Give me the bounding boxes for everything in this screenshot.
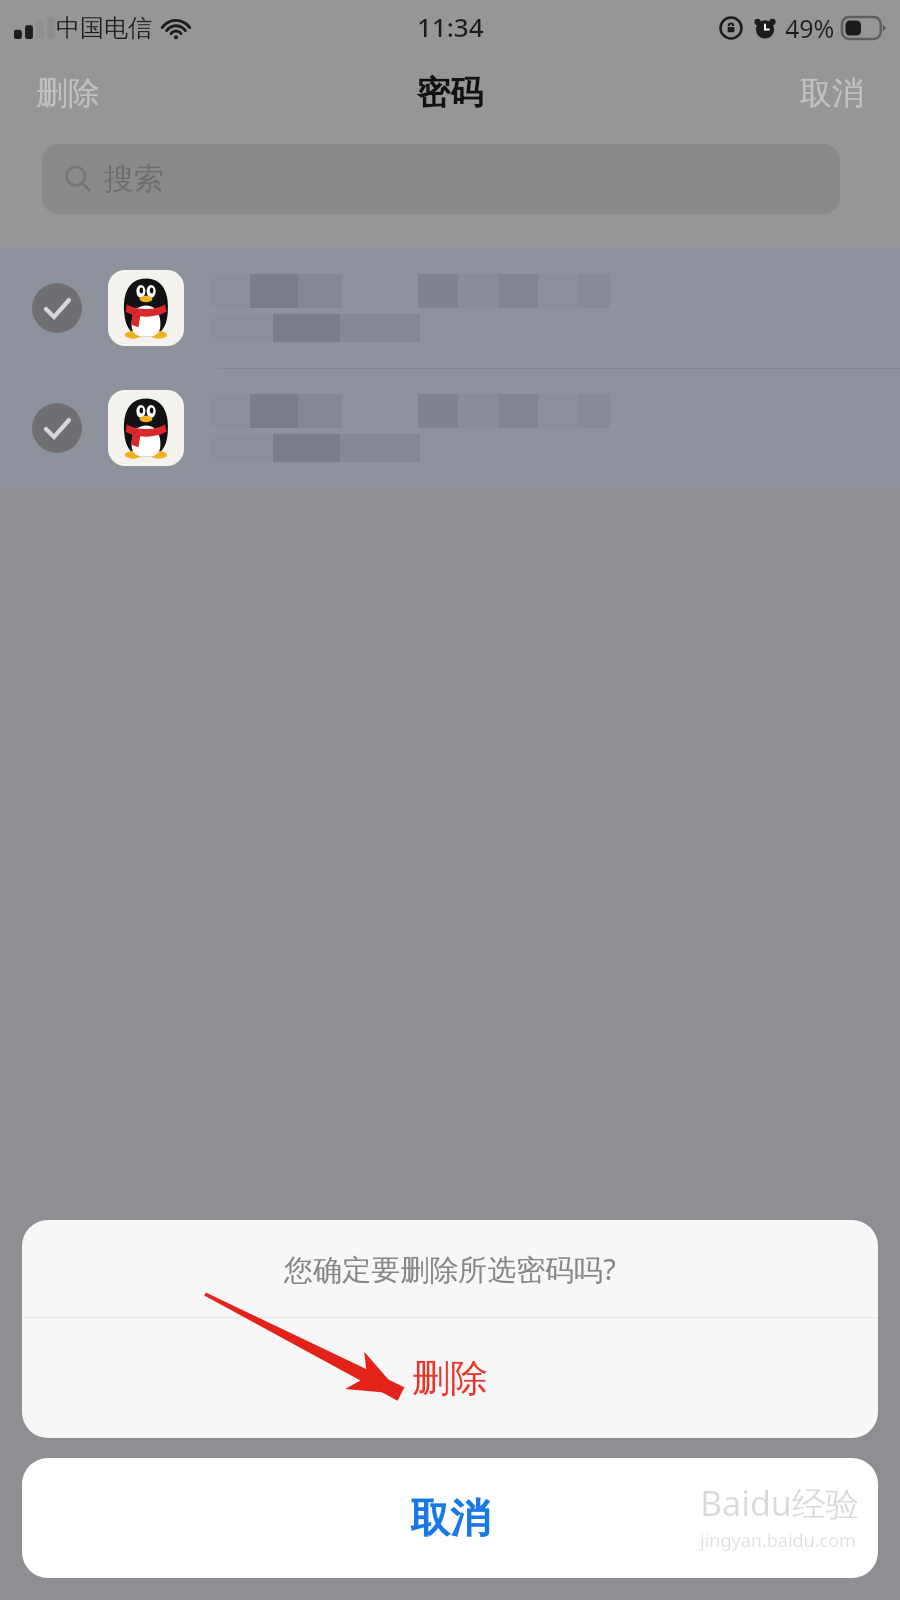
- button[interactable]: 取消: [22, 1458, 878, 1578]
- button[interactable]: Selected: [0, 368, 900, 488]
- other: Selected: [32, 403, 82, 453]
- staticText: 搜索: [104, 160, 164, 198]
- staticText: 11:34: [417, 9, 484, 44]
- staticText: 中国电信: [56, 13, 152, 43]
- staticText: 删除: [36, 73, 100, 113]
- staticText: Baidu经验: [700, 1480, 860, 1526]
- staticText: 49%: [785, 11, 835, 45]
- button[interactable]: 取消: [792, 67, 872, 119]
- staticText: 密码: [417, 72, 483, 114]
- staticText: jingyan.baidu.com: [700, 1528, 856, 1553]
- staticText: 删除: [412, 1354, 488, 1402]
- button[interactable]: 删除: [28, 67, 108, 119]
- button[interactable]: 删除: [22, 1318, 878, 1438]
- staticText: 取消: [800, 73, 864, 113]
- staticText: 您确定要删除所选密码吗?: [284, 1249, 616, 1289]
- staticText: 取消: [410, 1493, 490, 1543]
- button[interactable]: Selected: [0, 248, 900, 368]
- other: Selected: [32, 283, 82, 333]
